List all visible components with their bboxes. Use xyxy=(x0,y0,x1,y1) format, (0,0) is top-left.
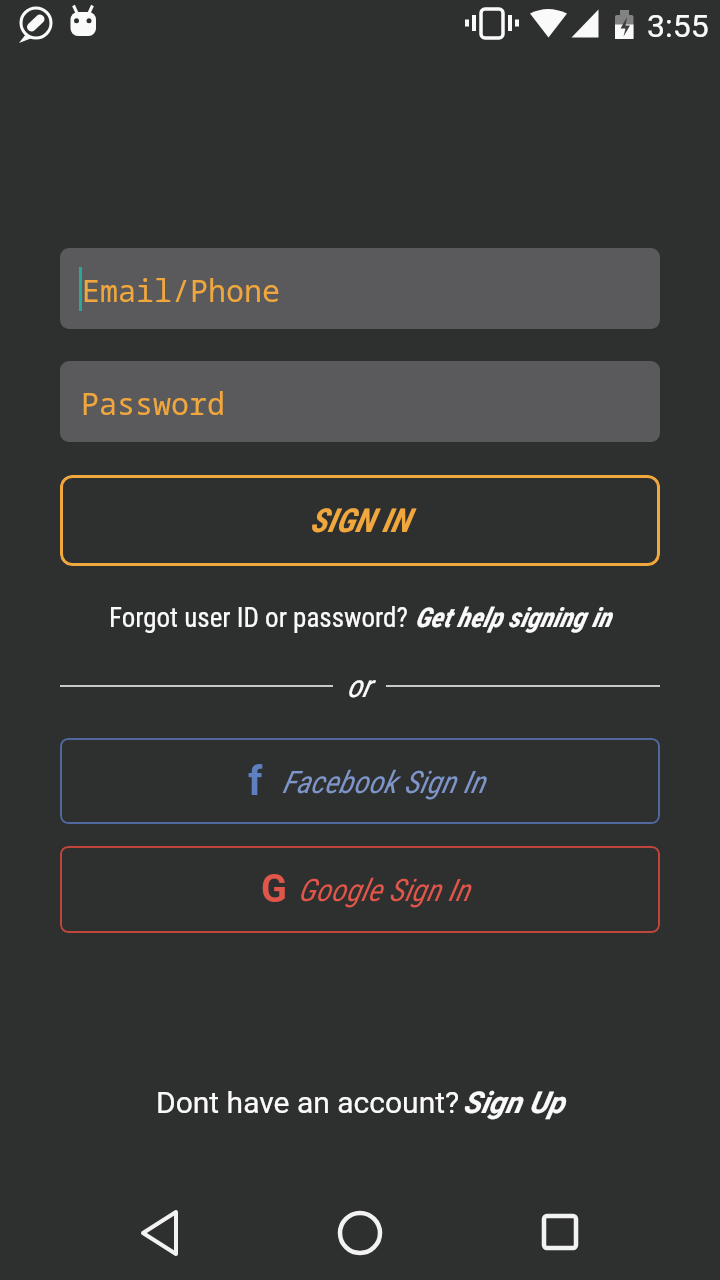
button[interactable]: f xyxy=(60,738,660,824)
button[interactable]: G xyxy=(60,846,660,933)
button[interactable]: Sign Up xyxy=(463,1085,565,1120)
button[interactable]: Email/Phone xyxy=(60,248,660,329)
staticText: Email/Phone xyxy=(82,270,280,311)
staticText: Forgot user ID or password? xyxy=(109,602,415,634)
staticText: 3:55 xyxy=(647,7,709,45)
staticText: SIGN IN xyxy=(310,501,411,540)
staticText: Dont have an account? xyxy=(156,1085,460,1120)
button[interactable]: SIGN IN xyxy=(60,475,660,566)
button[interactable] xyxy=(120,1193,200,1273)
staticText: Password xyxy=(81,383,225,424)
staticText: f xyxy=(248,758,263,805)
staticText: Facebook Sign In xyxy=(282,764,485,800)
staticText: or xyxy=(347,668,372,704)
staticText: Google Sign In xyxy=(298,872,470,908)
button[interactable] xyxy=(320,1193,400,1273)
button[interactable]: Password xyxy=(60,361,660,442)
button[interactable] xyxy=(520,1193,600,1273)
staticText: G xyxy=(261,867,287,912)
button[interactable]: Get help signing in xyxy=(415,602,612,634)
